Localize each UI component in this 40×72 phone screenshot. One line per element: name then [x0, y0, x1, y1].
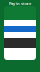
staticText: Pay in store [9, 1, 31, 6]
